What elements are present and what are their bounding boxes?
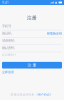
button[interactable]: 获取验证码 bbox=[47, 32, 62, 35]
staticText: 注 册 bbox=[27, 63, 36, 68]
staticText: 我已阅读并同意 bbox=[13, 93, 34, 96]
staticText: 注册 bbox=[27, 15, 37, 21]
button[interactable]: 忘记密码？ bbox=[2, 53, 17, 56]
staticText: 《用户协议》 bbox=[35, 93, 53, 96]
staticText: 验证码 bbox=[2, 31, 11, 35]
staticText: 立即登录 bbox=[2, 70, 14, 74]
staticText: 9:41 bbox=[2, 0, 9, 4]
staticText: 确认密码 bbox=[2, 46, 14, 50]
staticText: 获取验证码 bbox=[47, 32, 62, 35]
staticText: 手机号 bbox=[2, 24, 11, 28]
staticText: 忘记密码？ bbox=[2, 53, 17, 56]
button[interactable]: 我已阅读并同意 bbox=[11, 92, 53, 97]
button[interactable]: 立即登录 bbox=[2, 70, 14, 74]
staticText: 登录密码 bbox=[2, 38, 14, 43]
button[interactable]: 注 册 bbox=[2, 62, 62, 68]
